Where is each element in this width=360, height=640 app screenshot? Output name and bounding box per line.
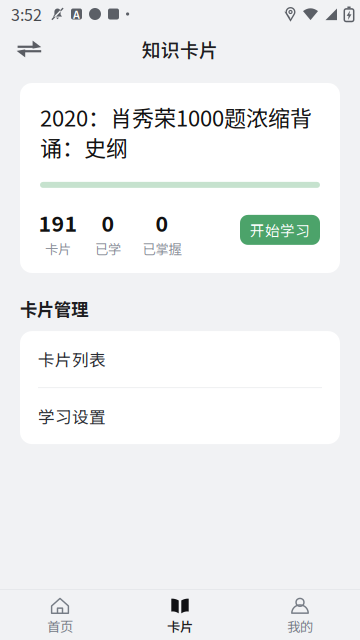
button[interactable]: 切换卡片集 — [7, 28, 51, 70]
staticText: 2020：肖秀荣1000题浓缩背诵：史纲 — [40, 102, 312, 162]
button[interactable]: 首页 — [0, 588, 120, 640]
button[interactable]: 卡片 — [120, 588, 240, 640]
staticText: 开始学习 — [250, 219, 310, 240]
staticText: A — [73, 6, 80, 22]
staticText: 我的 — [287, 616, 313, 636]
staticText: 已掌握 — [142, 239, 181, 258]
staticText: 已学 — [95, 239, 121, 258]
staticText: 3:52 — [11, 2, 42, 26]
staticText: 卡片 — [167, 616, 193, 636]
button[interactable]: 开始学习 — [240, 215, 320, 245]
staticText: 卡片列表 — [38, 347, 106, 371]
button[interactable]: 我的 — [240, 588, 360, 640]
button[interactable]: 卡片列表 — [20, 331, 340, 387]
staticText: 卡片管理 — [20, 296, 88, 321]
button[interactable]: 学习设置 — [20, 388, 340, 444]
staticText: 学习设置 — [38, 404, 106, 428]
staticText: 首页 — [47, 616, 73, 636]
staticText: 知识卡片 — [142, 35, 218, 62]
staticText: 0 — [155, 207, 168, 238]
staticText: 0 — [101, 207, 114, 238]
staticText: 191 — [38, 207, 77, 238]
staticText: 卡片 — [45, 239, 71, 258]
